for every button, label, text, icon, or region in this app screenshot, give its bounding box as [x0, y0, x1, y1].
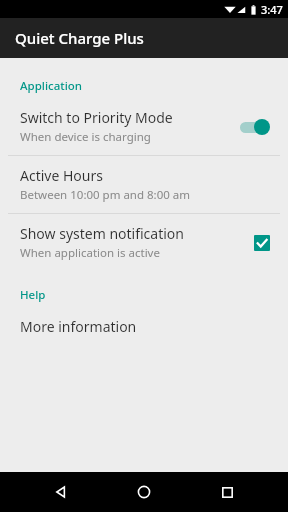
staticText: When application is active — [20, 245, 160, 261]
staticText: Active Hours — [20, 166, 103, 185]
staticText: Application — [20, 78, 82, 94]
button[interactable]: Back — [39, 472, 83, 512]
button[interactable]: Show system notification — [0, 214, 288, 271]
button[interactable]: Recent apps — [205, 472, 249, 512]
staticText: When device is charging — [20, 129, 151, 145]
staticText: Between 10:00 pm and 8:00 am — [20, 187, 191, 203]
button[interactable]: Home — [122, 472, 166, 512]
staticText: More information — [20, 317, 137, 336]
button[interactable]: More information — [0, 307, 288, 346]
button[interactable]: Switch to Priority Mode toggle — [238, 118, 272, 136]
staticText: 3:47 — [261, 2, 283, 17]
staticText: Help — [20, 287, 46, 303]
staticText: Show system notification — [20, 224, 184, 243]
staticText: Quiet Charge Plus — [15, 28, 144, 48]
button[interactable]: Show system notification checkbox — [252, 233, 272, 253]
button[interactable]: Switch to Priority Mode — [0, 98, 288, 155]
staticText: Switch to Priority Mode — [20, 108, 173, 127]
button[interactable]: Active Hours — [0, 156, 288, 213]
